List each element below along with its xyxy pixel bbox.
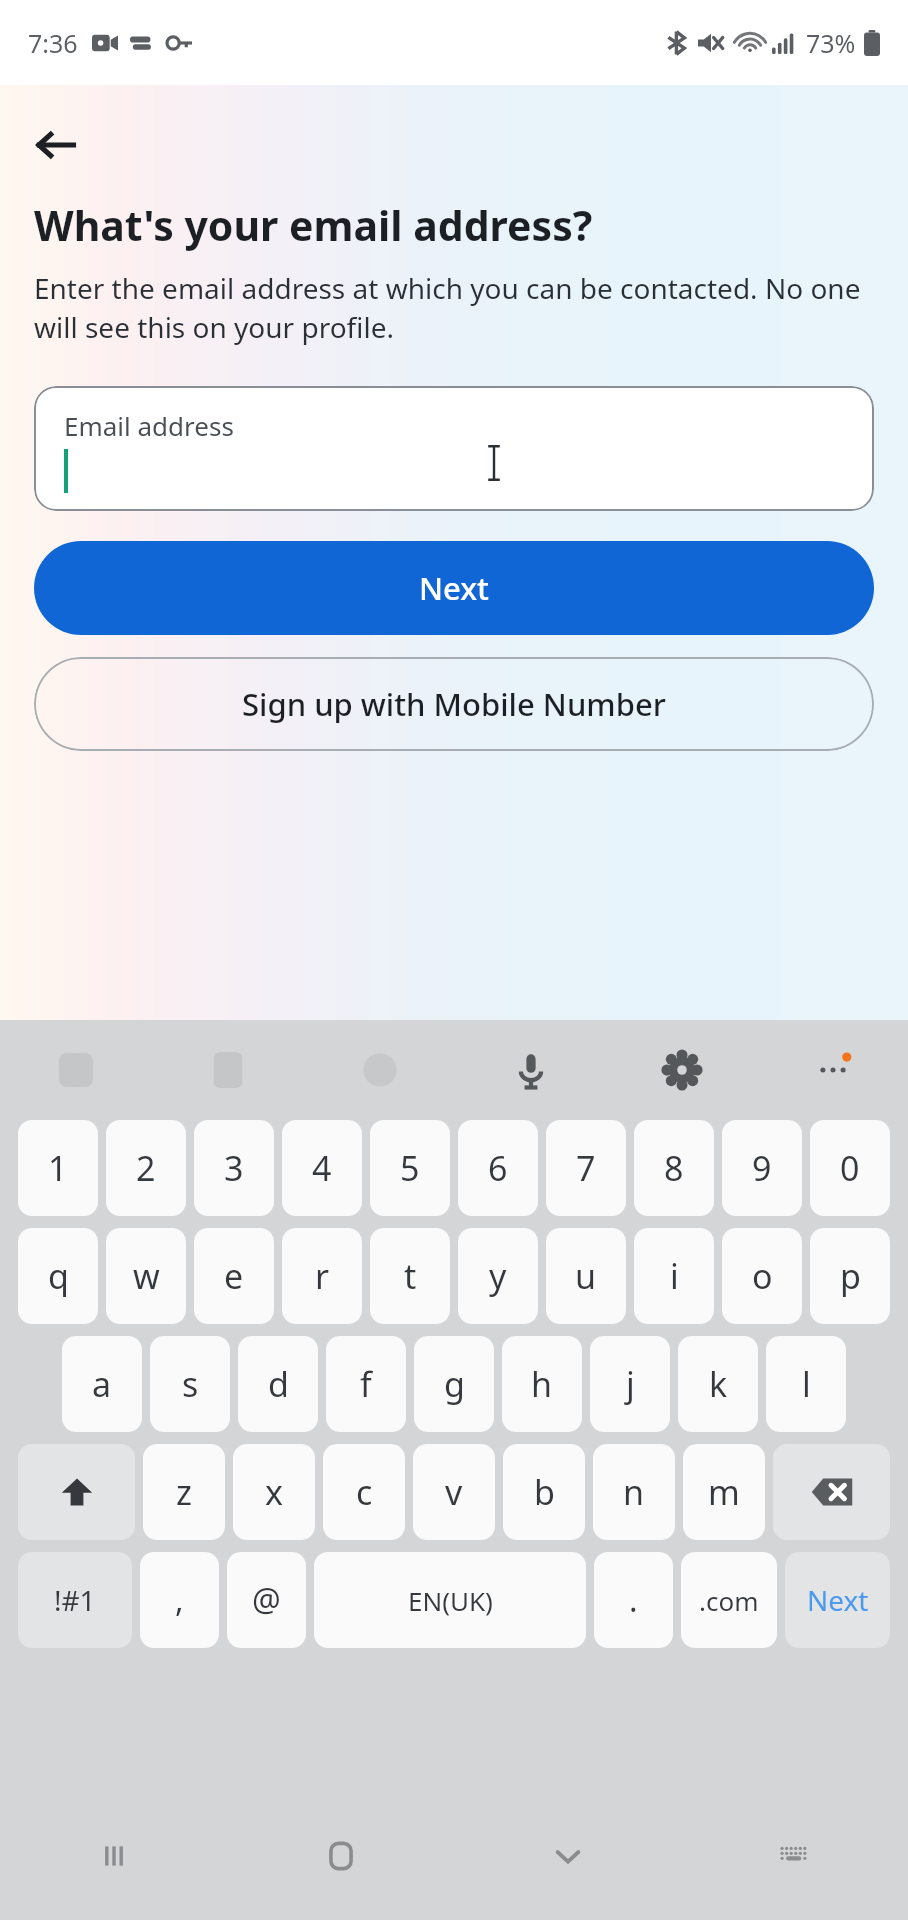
button[interactable]: k	[678, 1336, 758, 1432]
button[interactable]: e	[194, 1228, 274, 1324]
staticText: !#1	[54, 1581, 96, 1619]
button[interactable]: x	[233, 1444, 315, 1540]
button[interactable]: z	[143, 1444, 225, 1540]
staticText: c	[356, 1469, 373, 1515]
button[interactable]: d	[238, 1336, 318, 1432]
staticText: EN(UK)	[408, 1583, 493, 1618]
button[interactable]: q	[18, 1228, 98, 1324]
staticText: q	[48, 1253, 69, 1299]
button[interactable]: Backspace	[773, 1444, 890, 1540]
staticText: .com	[699, 1583, 759, 1618]
button[interactable]: u	[546, 1228, 626, 1324]
staticText: Next	[419, 567, 489, 609]
staticText: 0	[840, 1145, 860, 1191]
button[interactable]: EN(UK)	[314, 1552, 586, 1648]
button[interactable]: .	[594, 1552, 673, 1648]
staticText: r	[315, 1253, 330, 1299]
button[interactable]: j	[590, 1336, 670, 1432]
button[interactable]: p	[810, 1228, 890, 1324]
staticText: v	[445, 1469, 463, 1515]
button[interactable]: Home	[227, 1792, 454, 1920]
button[interactable]: Voice input	[455, 1020, 606, 1120]
staticText: d	[268, 1361, 289, 1407]
button[interactable]: Back	[18, 107, 94, 183]
button[interactable]: 5	[370, 1120, 450, 1216]
button[interactable]: GIF	[152, 1020, 304, 1120]
button[interactable]: More options	[757, 1020, 908, 1120]
button[interactable]: c	[323, 1444, 405, 1540]
staticText: y	[489, 1253, 507, 1299]
staticText: n	[623, 1469, 645, 1515]
staticText: 3	[224, 1145, 244, 1191]
staticText: Next	[807, 1581, 869, 1619]
button[interactable]: Shift	[18, 1444, 135, 1540]
button[interactable]: 0	[810, 1120, 890, 1216]
staticText: .	[629, 1578, 638, 1622]
button[interactable]: Hide keyboard	[454, 1792, 681, 1920]
button[interactable]: 3	[194, 1120, 274, 1216]
staticText: Sign up with Mobile Number	[242, 683, 666, 725]
staticText: j	[626, 1361, 635, 1407]
button[interactable]: Keyboard settings	[606, 1020, 757, 1120]
staticText: w	[133, 1253, 160, 1299]
button[interactable]: b	[503, 1444, 585, 1540]
button[interactable]: l	[766, 1336, 846, 1432]
button[interactable]: @	[227, 1552, 306, 1648]
button[interactable]: w	[106, 1228, 186, 1324]
button[interactable]: y	[458, 1228, 538, 1324]
staticText: 9	[752, 1145, 772, 1191]
staticText: What's your email address?	[34, 197, 874, 253]
button[interactable]: 1	[18, 1120, 98, 1216]
staticText: 8	[664, 1145, 684, 1191]
button[interactable]: n	[593, 1444, 675, 1540]
button[interactable]: ,	[140, 1552, 219, 1648]
button[interactable]: v	[413, 1444, 495, 1540]
button[interactable]: Sign up with Mobile Number	[34, 657, 874, 751]
staticText: x	[265, 1469, 283, 1515]
button[interactable]: 4	[282, 1120, 362, 1216]
staticText: i	[670, 1253, 679, 1299]
staticText: b	[534, 1469, 555, 1515]
staticText: 73%	[806, 26, 856, 60]
staticText: 4	[312, 1145, 332, 1191]
button[interactable]: s	[150, 1336, 230, 1432]
staticText: a	[92, 1361, 112, 1407]
button[interactable]: r	[282, 1228, 362, 1324]
button[interactable]: 7	[546, 1120, 626, 1216]
button[interactable]: o	[722, 1228, 802, 1324]
button[interactable]: Next	[34, 541, 874, 635]
button[interactable]: Recents	[0, 1792, 227, 1920]
button[interactable]: Next	[785, 1552, 890, 1648]
button[interactable]: g	[414, 1336, 494, 1432]
staticText: 7:36	[28, 26, 78, 60]
button[interactable]: Stickers	[0, 1020, 152, 1120]
button[interactable]: m	[683, 1444, 765, 1540]
button[interactable]: Email address	[34, 386, 874, 511]
staticText: k	[709, 1361, 728, 1407]
staticText: e	[224, 1253, 244, 1299]
staticText: u	[575, 1253, 597, 1299]
staticText: 6	[488, 1145, 508, 1191]
button[interactable]: 8	[634, 1120, 714, 1216]
button[interactable]: 9	[722, 1120, 802, 1216]
staticText: h	[531, 1361, 553, 1407]
staticText: ,	[175, 1578, 184, 1622]
staticText: 2	[136, 1145, 156, 1191]
button[interactable]: f	[326, 1336, 406, 1432]
staticText: 1	[48, 1145, 68, 1191]
staticText: @	[252, 1578, 281, 1622]
staticText: t	[404, 1253, 417, 1299]
button[interactable]: .com	[681, 1552, 777, 1648]
button[interactable]: t	[370, 1228, 450, 1324]
button[interactable]: h	[502, 1336, 582, 1432]
staticText: 5	[400, 1145, 420, 1191]
button[interactable]: 2	[106, 1120, 186, 1216]
staticText: Email address	[64, 408, 234, 443]
button[interactable]: a	[62, 1336, 142, 1432]
button[interactable]: !#1	[18, 1552, 132, 1648]
button[interactable]: Switch keyboard	[681, 1792, 908, 1920]
button[interactable]: 6	[458, 1120, 538, 1216]
button[interactable]: i	[634, 1228, 714, 1324]
staticText: o	[752, 1253, 773, 1299]
